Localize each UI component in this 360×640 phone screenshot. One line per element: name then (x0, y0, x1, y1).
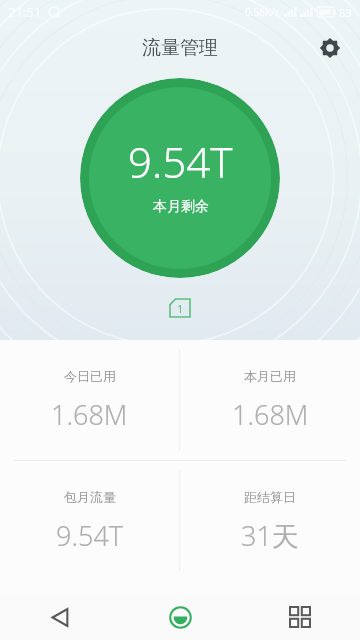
staticText: 流量管理 (142, 36, 218, 60)
button[interactable]: Back (0, 594, 120, 640)
staticText: 83 (339, 5, 352, 20)
staticText: 31天 (241, 517, 299, 554)
staticText: 9.54T (56, 517, 124, 554)
button[interactable]: 本月已用 (180, 340, 360, 460)
staticText: 距结算日 (244, 489, 296, 505)
staticText: 今日已用 (64, 368, 116, 384)
button[interactable]: SIM 1 (169, 298, 191, 318)
staticText: 本月已用 (244, 368, 296, 384)
button[interactable]: 包月流量 (0, 461, 179, 581)
staticText: 21:51 (8, 3, 42, 21)
button[interactable]: 9.54T (80, 78, 280, 278)
staticText: 1 (177, 301, 184, 316)
button[interactable]: Recents (240, 594, 360, 640)
button[interactable]: Home (120, 594, 240, 640)
staticText: 本月剩余 (153, 198, 209, 216)
button[interactable]: 今日已用 (0, 340, 179, 460)
staticText: 1.68M (51, 396, 128, 433)
button[interactable]: 距结算日 (180, 461, 360, 581)
staticText: 包月流量 (64, 489, 116, 505)
button[interactable]: Settings (308, 26, 352, 70)
staticText: 0.58K/s (245, 5, 280, 19)
staticText: 1.68M (232, 396, 309, 433)
staticText: 9.54T (128, 133, 233, 190)
